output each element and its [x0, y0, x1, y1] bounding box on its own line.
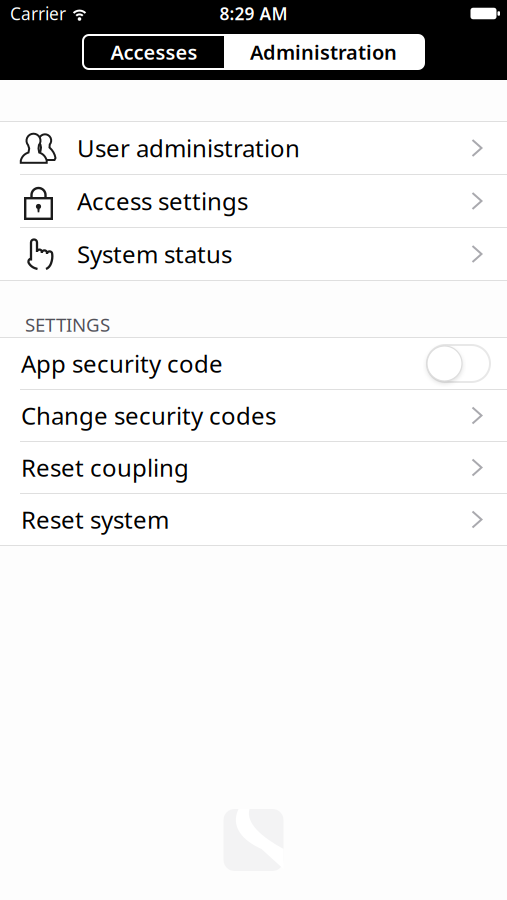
button[interactable]: App security code: [427, 345, 490, 382]
staticText: Reset system: [21, 504, 169, 535]
staticText: System status: [77, 238, 232, 270]
button[interactable]: User administration: [0, 122, 507, 174]
staticText: App security code: [21, 348, 223, 379]
staticText: Change security codes: [21, 400, 276, 431]
button[interactable]: Reset coupling: [0, 442, 507, 493]
button[interactable]: Reset system: [0, 494, 507, 545]
staticText: Reset coupling: [21, 452, 189, 483]
button[interactable]: Access settings: [0, 175, 507, 227]
staticText: Accesses: [110, 39, 197, 65]
button[interactable]: Change security codes: [0, 390, 507, 441]
staticText: Carrier: [10, 2, 66, 25]
staticText: SETTINGS: [25, 312, 110, 337]
staticText: 8:29 AM: [219, 2, 287, 25]
staticText: Administration: [250, 39, 397, 65]
button[interactable]: System status: [0, 228, 507, 280]
button[interactable]: Accesses: [84, 36, 224, 68]
staticText: Access settings: [77, 185, 248, 217]
staticText: User administration: [77, 132, 300, 164]
button[interactable]: Administration: [224, 36, 423, 68]
